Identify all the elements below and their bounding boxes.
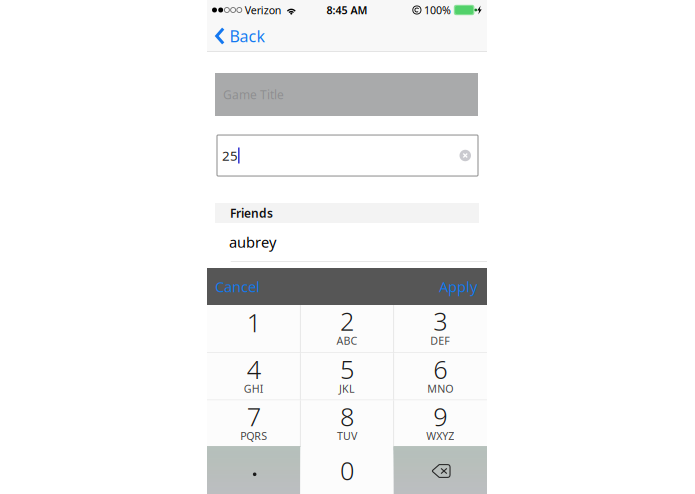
staticText: aubrey: [229, 232, 276, 252]
staticText: 100%: [424, 3, 451, 17]
button[interactable]: aubrey: [207, 222, 487, 262]
staticText: TUV: [337, 429, 357, 443]
button[interactable]: Delete: [394, 447, 487, 494]
staticText: Back: [230, 25, 266, 47]
staticText: 7: [247, 400, 261, 433]
button[interactable]: Back: [207, 20, 266, 52]
button[interactable]: 1: [207, 305, 300, 352]
staticText: 0: [340, 453, 354, 487]
staticText: 5: [340, 352, 354, 386]
staticText: 4: [247, 352, 261, 386]
button[interactable]: 3: [394, 305, 487, 352]
staticText: Game Title: [223, 86, 284, 102]
staticText: GHI: [244, 382, 264, 396]
staticText: 9: [433, 400, 447, 433]
button[interactable]: 9: [394, 400, 487, 447]
staticText: PQRS: [240, 429, 267, 443]
button[interactable]: 4: [207, 353, 300, 400]
staticText: Cancel: [215, 277, 260, 296]
staticText: 8: [340, 400, 354, 433]
staticText: 2: [340, 304, 354, 338]
staticText: Friends: [230, 205, 273, 221]
staticText: MNO: [427, 382, 453, 396]
button[interactable]: 6: [394, 353, 487, 400]
button[interactable]: 7: [207, 400, 300, 447]
button[interactable]: 8: [300, 400, 394, 447]
button[interactable]: 2: [300, 305, 394, 352]
button[interactable]: Apply: [429, 268, 487, 305]
staticText: ABC: [336, 333, 357, 348]
staticText: 25: [222, 147, 238, 164]
staticText: JKL: [339, 382, 355, 396]
staticText: 1: [247, 306, 261, 339]
button[interactable]: 5: [300, 353, 394, 400]
staticText: Verizon: [245, 3, 282, 17]
button[interactable]: Cancel: [207, 268, 268, 305]
staticText: 3: [433, 304, 447, 338]
staticText: 6: [433, 352, 447, 386]
button[interactable]: Decimal point: [207, 447, 300, 494]
staticText: Apply: [439, 277, 477, 296]
staticText: WXYZ: [426, 429, 454, 443]
staticText: 8:45 AM: [326, 3, 367, 17]
staticText: DEF: [430, 333, 450, 348]
button[interactable]: 0: [300, 447, 394, 494]
